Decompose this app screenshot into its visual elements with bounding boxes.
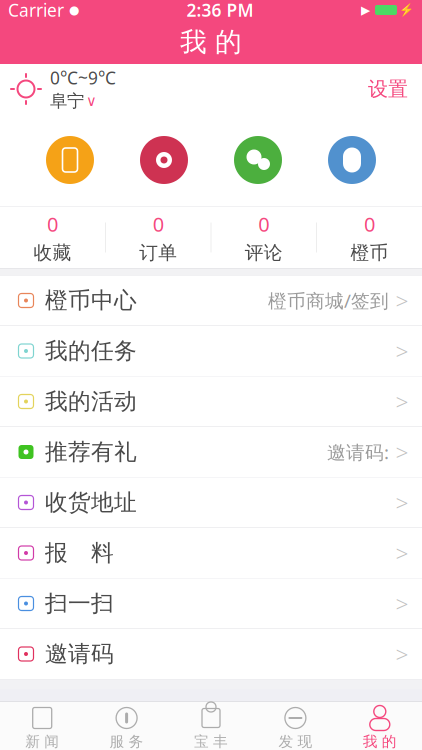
- staticText: 0°C~9°C: [50, 66, 116, 89]
- staticText: 橙币中心: [45, 287, 137, 314]
- staticText: >: [395, 437, 408, 467]
- staticText: ∨: [86, 93, 97, 109]
- staticText: >: [395, 285, 408, 315]
- staticText: ▶: [361, 3, 370, 17]
- button[interactable]: 橙币中心: [0, 275, 422, 326]
- staticText: >: [395, 588, 408, 618]
- button[interactable]: 0: [211, 202, 316, 273]
- button[interactable]: 报 料: [0, 528, 422, 578]
- staticText: 邀请码: [45, 640, 114, 668]
- button[interactable]: 发 现: [253, 701, 338, 750]
- button[interactable]: 我的活动: [0, 376, 422, 427]
- button[interactable]: 扫一扫: [0, 578, 422, 629]
- button[interactable]: 邀请码: [0, 629, 422, 679]
- staticText: 服 务: [110, 732, 144, 750]
- button[interactable]: Phone login: [46, 136, 94, 184]
- staticText: Carrier: [8, 0, 64, 21]
- staticText: 阜宁: [50, 90, 84, 112]
- staticText: 扫一扫: [45, 590, 114, 617]
- button[interactable]: WeChat login: [234, 136, 282, 184]
- staticText: 发 现: [278, 732, 312, 750]
- staticText: 0: [364, 211, 375, 237]
- staticText: 橙币商城/签到: [268, 288, 389, 313]
- staticText: 设置: [368, 77, 408, 101]
- staticText: 我的任务: [45, 337, 137, 365]
- staticText: 我 的: [363, 732, 397, 750]
- staticText: ⚡: [399, 3, 414, 17]
- staticText: >: [395, 487, 408, 517]
- button[interactable]: 设置: [354, 67, 422, 111]
- staticText: 新 闻: [25, 732, 59, 750]
- button[interactable]: 服 务: [84, 701, 169, 750]
- staticText: 0: [258, 211, 269, 237]
- staticText: >: [395, 639, 408, 669]
- staticText: 评论: [245, 241, 283, 264]
- staticText: 我 的: [180, 26, 242, 58]
- staticText: 收藏: [34, 241, 72, 264]
- staticText: >: [395, 386, 408, 416]
- staticText: >: [395, 336, 408, 366]
- staticText: 我的活动: [45, 388, 137, 415]
- button[interactable]: QQ login: [328, 136, 376, 184]
- staticText: >: [395, 538, 408, 568]
- staticText: 0: [47, 211, 58, 237]
- staticText: 2:36 PM: [186, 0, 253, 21]
- staticText: 0: [153, 211, 164, 237]
- button[interactable]: 收货地址: [0, 477, 422, 528]
- staticText: 邀请码:: [327, 440, 389, 464]
- staticText: 报 料: [45, 539, 114, 567]
- staticText: 订单: [139, 241, 177, 264]
- button[interactable]: 0: [0, 202, 105, 273]
- staticText: 收货地址: [45, 489, 137, 516]
- button[interactable]: 宝 丰: [169, 701, 253, 750]
- button[interactable]: 我 的: [338, 701, 422, 750]
- button[interactable]: 新 闻: [0, 701, 84, 750]
- staticText: 推荐有礼: [45, 438, 137, 466]
- button[interactable]: 0: [317, 202, 422, 273]
- button[interactable]: Weibo login: [140, 136, 188, 184]
- button[interactable]: 我的任务: [0, 326, 422, 376]
- staticText: 宝 丰: [194, 732, 228, 750]
- button[interactable]: 推荐有礼: [0, 427, 422, 477]
- staticText: 橙币: [350, 241, 388, 264]
- staticText: ●: [69, 3, 79, 17]
- button[interactable]: 0: [106, 202, 211, 273]
